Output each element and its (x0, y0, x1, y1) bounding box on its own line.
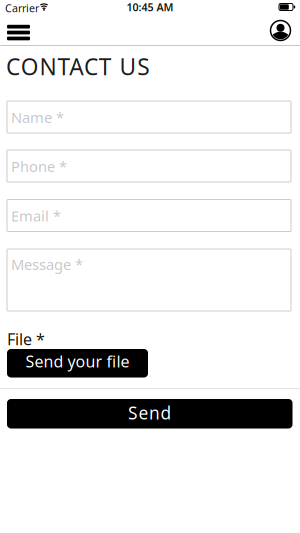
staticText: File * (7, 328, 45, 350)
textField[interactable]: Email * (7, 199, 291, 230)
button[interactable]: Send (7, 399, 292, 428)
staticText: Phone * (11, 156, 67, 176)
button[interactable]: Account (270, 20, 291, 41)
staticText: Email * (11, 206, 61, 225)
staticText: Carrier (5, 1, 39, 15)
staticText (7, 101, 13, 131)
textField[interactable]: Name * (7, 101, 291, 131)
staticText (7, 150, 13, 180)
staticText: Name * (11, 107, 64, 127)
textField[interactable]: Message * (7, 249, 291, 309)
staticText (7, 199, 13, 230)
staticText: Send (128, 401, 171, 424)
button[interactable]: Send your file (7, 349, 148, 377)
textField[interactable]: Phone * (7, 150, 291, 180)
button[interactable]: Menu (7, 25, 30, 40)
staticText: Message * (11, 254, 83, 274)
staticText: 10:45 AM (126, 0, 173, 14)
staticText: Send your file (25, 351, 129, 372)
staticText: CONTACT US (6, 51, 149, 82)
staticText (7, 249, 13, 309)
